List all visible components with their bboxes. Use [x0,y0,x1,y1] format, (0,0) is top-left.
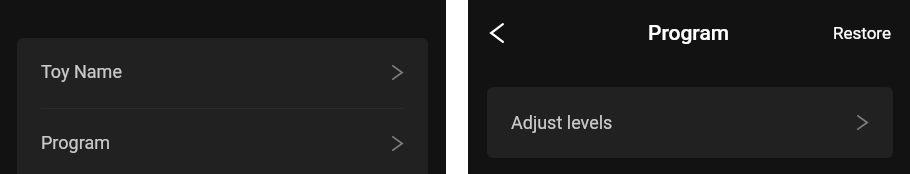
button[interactable]: Restore [814,13,910,53]
button[interactable]: Back [475,11,519,55]
staticText: Restore [833,23,891,43]
staticText: Adjust levels [511,112,613,133]
staticText: Toy Name [41,61,122,82]
staticText: Program [648,21,730,46]
button[interactable]: Program [17,109,428,174]
button[interactable]: Toy Name [17,38,428,108]
button[interactable]: Adjust levels [487,87,893,158]
staticText: Program [41,132,110,153]
